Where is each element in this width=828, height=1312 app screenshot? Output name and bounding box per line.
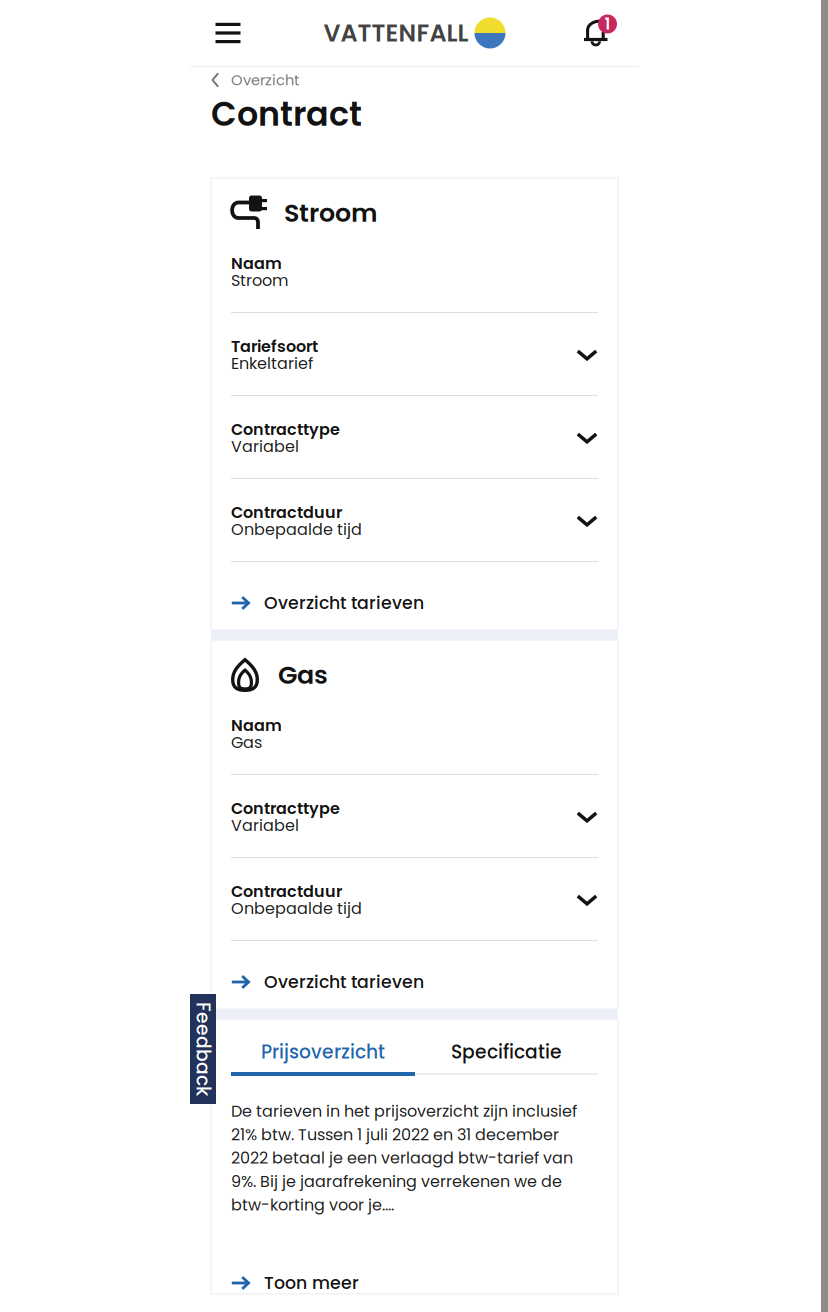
staticText: Stroom: [231, 269, 288, 292]
staticText: Contracttype: [231, 797, 340, 820]
button[interactable]: Overzicht tarieven: [231, 592, 598, 614]
button[interactable]: Menu: [204, 9, 252, 57]
staticText: Gas: [278, 657, 328, 693]
button[interactable]: Prijsoverzicht: [231, 1035, 415, 1076]
staticText: Tariefsoort: [231, 335, 318, 358]
staticText: 1: [604, 13, 610, 35]
staticText: Overzicht tarieven: [264, 591, 424, 615]
staticText: Prijsoverzicht: [261, 1039, 385, 1065]
button[interactable]: Overzicht: [211, 69, 618, 91]
staticText: VATTENFALL: [323, 16, 468, 50]
staticText: Stroom: [284, 195, 378, 231]
staticText: Feedback: [156, 1036, 250, 1062]
staticText: Gas: [231, 731, 262, 754]
staticText: Toon meer: [264, 1271, 359, 1295]
staticText: Overzicht: [231, 70, 299, 90]
button[interactable]: Toon meer: [231, 1272, 598, 1294]
button[interactable]: Specificatie: [415, 1035, 598, 1076]
staticText: Naam: [231, 714, 282, 737]
staticText: Variabel: [231, 435, 299, 458]
staticText: Onbepaalde tijd: [231, 897, 362, 920]
staticText: Enkeltarief: [231, 352, 313, 375]
staticText: Specificatie: [451, 1039, 562, 1065]
staticText: Contracttype: [231, 418, 340, 441]
staticText: Variabel: [231, 814, 299, 837]
staticText: Contractduur: [231, 880, 342, 903]
staticText: De tarieven in het prijsoverzicht zijn i…: [231, 1100, 577, 1216]
staticText: Overzicht tarieven: [264, 970, 424, 994]
button[interactable]: Feedback: [190, 994, 216, 1104]
staticText: Contract: [211, 91, 362, 137]
staticText: Naam: [231, 252, 282, 275]
staticText: Onbepaalde tijd: [231, 518, 362, 541]
staticText: Contractduur: [231, 501, 342, 524]
button[interactable]: Notifications: [577, 9, 625, 57]
button[interactable]: Overzicht tarieven: [231, 971, 598, 993]
